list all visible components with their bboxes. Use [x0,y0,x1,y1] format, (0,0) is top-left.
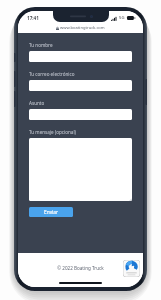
button[interactable]: Text field [29,109,132,120]
staticText: Enviar [44,209,58,216]
button[interactable]: www.boatingtruck.com [18,23,143,33]
staticText: Asunto [29,100,45,106]
button[interactable]: Text field [29,80,132,91]
staticText: © 2022 Boating Truck [57,265,104,271]
staticText: Tu mensaje (opcional) [29,129,76,135]
staticText: www.boatingtruck.com [60,25,105,31]
staticText: Tu nombre [29,42,53,48]
button[interactable]: Enviar [29,207,73,217]
staticText: 17:41 [27,15,39,21]
button[interactable]: reCAPTCHA [123,260,140,277]
button[interactable]: Text field [29,51,132,62]
staticText: Tu correo electrónico [29,71,75,77]
staticText: 5G [119,15,125,21]
